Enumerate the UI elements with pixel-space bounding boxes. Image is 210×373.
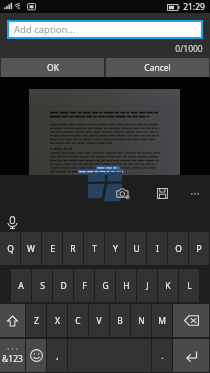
button[interactable]: R [63,232,83,265]
button[interactable]: Backspace [173,304,209,337]
button[interactable]: Add caption... [9,22,201,37]
button[interactable]: Cancel [106,58,209,77]
staticText: M [158,315,166,327]
button[interactable]: W [21,232,41,265]
staticText: B [117,315,123,327]
staticText: O [175,243,182,255]
button[interactable]: P [189,232,209,265]
staticText: U [133,243,140,255]
button[interactable]: V [89,304,109,337]
staticText: . [161,350,164,362]
staticText: E [50,243,55,255]
staticText: S [40,280,45,292]
button[interactable]: , [47,339,67,372]
staticText: X [55,315,60,327]
staticText: C [75,315,81,327]
button[interactable]: Y [105,232,125,265]
button[interactable]: S [32,269,52,302]
button[interactable]: Enter [173,339,209,372]
button[interactable]: &123 [0,339,25,372]
staticText: Y [113,243,118,255]
staticText: P [196,243,202,255]
button[interactable]: More options [184,181,207,205]
staticText: Q [7,243,14,255]
button[interactable]: F [74,269,94,302]
staticText: 21:29 [183,1,205,13]
staticText: W [27,243,35,255]
button[interactable]: Z [26,304,46,337]
button[interactable]: Shift [0,304,25,337]
button[interactable]: T [84,232,104,265]
staticText: D [60,280,67,292]
staticText: V [96,315,102,327]
staticText: Cancel [144,62,171,74]
staticText: OK [47,62,59,74]
button[interactable]: E [42,232,62,265]
button[interactable]: OK [1,58,104,77]
button[interactable]: J [137,269,157,302]
button[interactable]: C [68,304,88,337]
button[interactable]: Save [150,181,174,205]
staticText: J [146,280,149,292]
staticText: Add caption... [14,23,76,36]
button[interactable]: L [179,269,199,302]
button[interactable]: G [95,269,115,302]
staticText: Z [34,315,39,327]
button[interactable]: M [152,304,172,337]
staticText: N [138,315,145,327]
button[interactable]: D [53,269,73,302]
button[interactable]: Emoji [26,339,46,372]
staticText: I [156,243,159,255]
button[interactable]: B [110,304,130,337]
button[interactable]: N [131,304,151,337]
staticText: H [123,280,130,292]
staticText: K [165,280,171,292]
button[interactable]: Voice input [3,213,22,232]
staticText: G [102,280,109,292]
button[interactable]: H [116,269,136,302]
button[interactable]: I [147,232,167,265]
staticText: R [70,243,76,255]
button[interactable]: Retake photo [110,181,135,205]
staticText: F [82,280,87,292]
staticText: T [92,243,97,255]
button[interactable]: K [158,269,178,302]
staticText: 0/1000 [175,43,203,55]
staticText: A [18,280,24,292]
button[interactable]: . [152,339,172,372]
button[interactable]: X [47,304,67,337]
button[interactable]: A [11,269,31,302]
staticText: L [187,280,192,292]
staticText: , [56,350,59,362]
staticText: &123 [2,353,23,365]
button[interactable]: Q [0,232,20,265]
button[interactable]: U [126,232,146,265]
button[interactable]: O [168,232,188,265]
